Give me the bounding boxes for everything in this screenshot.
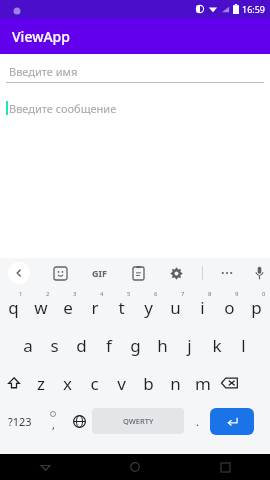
staticText: Введите имя (9, 64, 78, 79)
button[interactable]: e (54, 289, 81, 325)
button[interactable]: Введите имя (6, 60, 264, 82)
staticText: Введите сообщение (9, 101, 117, 116)
button[interactable]: l (230, 327, 257, 363)
staticText: o (224, 296, 235, 319)
staticText: ViewApp (12, 27, 70, 46)
staticText: f (106, 334, 112, 357)
staticText: y (144, 296, 153, 319)
button[interactable]: m (189, 365, 216, 401)
staticText: q (8, 296, 19, 319)
staticText: QWERTY (123, 416, 154, 426)
button[interactable]: Clipboard (126, 261, 150, 285)
staticText: 8 (208, 290, 212, 298)
staticText: p (251, 296, 262, 319)
staticText: 2 (46, 290, 50, 298)
staticText: i (200, 296, 205, 319)
staticText: 6 (154, 290, 158, 298)
button[interactable]: Back (0, 454, 90, 480)
staticText: a (23, 334, 33, 357)
staticText: , (52, 417, 55, 432)
button[interactable]: Stickers (48, 261, 72, 285)
button[interactable]: j (176, 327, 203, 363)
staticText: c (90, 372, 99, 395)
button[interactable]: Shift (0, 365, 27, 401)
button[interactable]: s (41, 327, 68, 363)
staticText: e (63, 296, 73, 319)
staticText: d (76, 334, 87, 357)
staticText: 0 (262, 290, 266, 298)
button[interactable]: Settings (164, 261, 188, 285)
staticText: h (157, 334, 168, 357)
button[interactable]: ?123 (0, 404, 40, 438)
button[interactable]: u (162, 289, 189, 325)
staticText: n (170, 372, 181, 395)
staticText: z (37, 372, 45, 395)
staticText: 1 (19, 290, 23, 298)
button[interactable]: b (135, 365, 162, 401)
staticText: j (187, 334, 192, 357)
staticText: 7 (181, 290, 185, 298)
staticText: 3 (73, 290, 77, 298)
staticText: 9 (235, 290, 239, 298)
button[interactable]: y (135, 289, 162, 325)
button[interactable]: p (243, 289, 270, 325)
button[interactable]: g (122, 327, 149, 363)
staticText: g (130, 334, 141, 357)
button[interactable]: n (162, 365, 189, 401)
button[interactable]: i (189, 289, 216, 325)
button[interactable]: More options (215, 261, 239, 285)
button[interactable]: v (108, 365, 135, 401)
button[interactable]: a (14, 327, 41, 363)
staticText: v (117, 372, 126, 395)
button[interactable]: Введите сообщение (6, 97, 264, 119)
staticText: 4 (100, 290, 104, 298)
button[interactable]: Home (90, 454, 180, 480)
button[interactable]: Emoji and comma (40, 404, 66, 438)
button[interactable]: GIF (86, 261, 112, 285)
button[interactable]: z (27, 365, 54, 401)
button[interactable]: r (81, 289, 108, 325)
staticText: w (34, 296, 48, 319)
staticText: r (91, 296, 99, 319)
button[interactable]: f (95, 327, 122, 363)
staticText: 16:59 (242, 3, 266, 15)
button[interactable]: Back (8, 262, 30, 284)
button[interactable]: Change language (66, 404, 92, 438)
button[interactable]: Backspace (216, 365, 243, 401)
button[interactable]: Enter (210, 408, 254, 435)
staticText: l (241, 334, 246, 357)
button[interactable]: d (68, 327, 95, 363)
staticText: u (170, 296, 181, 319)
button[interactable]: q (0, 289, 27, 325)
button[interactable]: h (149, 327, 176, 363)
button[interactable]: w (27, 289, 54, 325)
button[interactable]: c (81, 365, 108, 401)
button[interactable]: QWERTY (92, 408, 184, 434)
button[interactable]: Recent apps (180, 454, 270, 480)
staticText: m (195, 372, 211, 395)
staticText: ?123 (8, 414, 32, 429)
button[interactable]: . (184, 404, 210, 438)
staticText: t (118, 296, 125, 319)
staticText: GIF (92, 267, 107, 279)
staticText: b (143, 372, 154, 395)
staticText: 5 (127, 290, 131, 298)
staticText: k (212, 334, 222, 357)
staticText: x (63, 372, 72, 395)
button[interactable]: t (108, 289, 135, 325)
button[interactable]: x (54, 365, 81, 401)
staticText: s (50, 334, 59, 357)
button[interactable]: o (216, 289, 243, 325)
button[interactable]: k (203, 327, 230, 363)
staticText: . (196, 414, 199, 429)
button[interactable]: Voice input (249, 261, 270, 285)
